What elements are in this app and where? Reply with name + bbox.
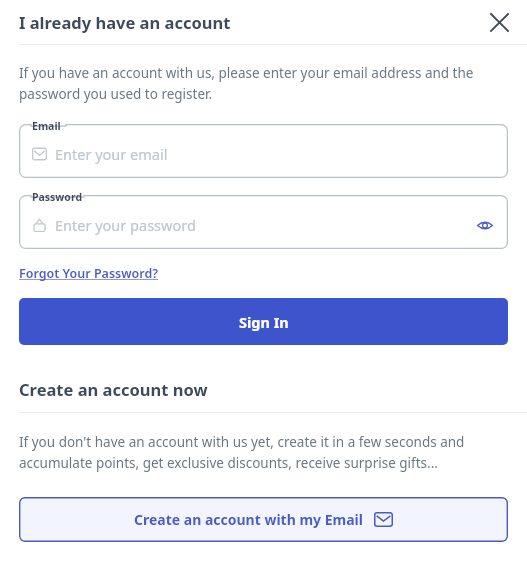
- button[interactable]: [19, 195, 508, 249]
- staticText: Create an account with my Email: [134, 510, 363, 529]
- button[interactable]: Close: [481, 4, 517, 40]
- staticText: Create an account now: [19, 378, 208, 400]
- staticText: Email: [32, 119, 61, 133]
- button[interactable]: Show password: [470, 210, 500, 240]
- staticText: Forgot Your Password?: [19, 265, 159, 282]
- staticText: Password: [32, 190, 83, 204]
- button[interactable]: Create an account with my Email: [19, 497, 508, 542]
- staticText: Enter your password: [55, 215, 196, 235]
- button[interactable]: [19, 124, 508, 178]
- staticText: If you have an account with us, please e…: [19, 64, 474, 82]
- staticText: accumulate points, get exclusive discoun…: [19, 454, 438, 472]
- staticText: password you used to register.: [19, 85, 213, 103]
- button[interactable]: Sign In: [19, 298, 508, 345]
- staticText: If you don't have an account with us yet…: [19, 433, 465, 451]
- button[interactable]: Forgot Your Password?: [19, 263, 159, 284]
- staticText: Enter your email: [55, 144, 168, 164]
- staticText: Sign In: [239, 312, 289, 332]
- staticText: I already have an account: [19, 11, 231, 33]
